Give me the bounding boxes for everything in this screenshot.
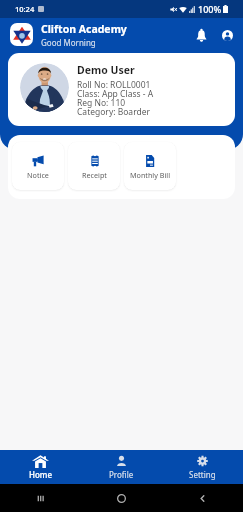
button[interactable]: Home (0, 450, 81, 484)
staticText: Monthly Bill (130, 170, 170, 180)
staticText: 10:24 (15, 4, 35, 14)
staticText: 100% (198, 3, 222, 15)
staticText: Demo User (77, 63, 135, 77)
button[interactable]: Profile (81, 450, 162, 484)
button[interactable]: Setting (162, 450, 243, 484)
button[interactable]: Monthly Bill (124, 142, 176, 190)
button[interactable]: Notifications (190, 24, 212, 46)
button[interactable]: Receipt (68, 142, 120, 190)
staticText: Clifton Academy (41, 22, 127, 36)
staticText: Roll No: ROLL0001 Class: App Class - A R… (77, 79, 154, 118)
staticText: Setting (189, 469, 216, 480)
button[interactable]: Account (216, 24, 238, 46)
staticText: Good Morning (41, 37, 96, 48)
staticText: Receipt (82, 170, 107, 180)
staticText: Profile (109, 469, 134, 480)
button[interactable]: Demo User (8, 53, 235, 126)
staticText: Home (29, 469, 53, 480)
staticText: Notice (27, 170, 49, 180)
button[interactable]: Notice (12, 142, 64, 190)
